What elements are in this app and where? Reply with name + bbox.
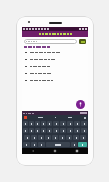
button[interactable]: Enter	[78, 142, 87, 147]
button[interactable]: Key	[74, 128, 80, 133]
button[interactable]	[24, 39, 77, 44]
button[interactable]: Home	[44, 148, 66, 154]
button[interactable]: Key	[53, 121, 59, 126]
button[interactable]: Key	[29, 128, 34, 133]
button[interactable]	[22, 31, 88, 37]
button[interactable]: Back	[22, 148, 44, 154]
button[interactable]: Key	[81, 128, 87, 133]
button[interactable]	[22, 77, 88, 84]
button[interactable]: Key	[74, 121, 80, 126]
button[interactable]: Key	[59, 135, 65, 140]
button[interactable]: Recents	[66, 148, 88, 154]
button[interactable]: Key	[35, 121, 40, 126]
button[interactable]: Key	[60, 121, 66, 126]
button[interactable]	[22, 63, 88, 70]
button[interactable]: Key	[45, 135, 51, 140]
button[interactable]: Key	[67, 128, 73, 133]
button[interactable]	[22, 56, 88, 63]
button[interactable]: Key	[24, 135, 30, 140]
button[interactable]: Key	[23, 121, 28, 126]
button[interactable]: Key	[73, 135, 79, 140]
button[interactable]: Add	[76, 100, 85, 109]
button[interactable]: Period	[71, 142, 77, 147]
button[interactable]: Space	[46, 142, 70, 147]
button[interactable]: Key	[29, 121, 34, 126]
button[interactable]: Key	[60, 128, 66, 133]
button[interactable]: Key	[38, 135, 44, 140]
button[interactable]: Key	[53, 128, 59, 133]
button[interactable]: Key	[41, 121, 46, 126]
button[interactable]: Key	[47, 128, 52, 133]
button[interactable]: Language	[38, 142, 45, 147]
button[interactable]: Key	[81, 121, 87, 126]
button[interactable]: Key	[66, 135, 72, 140]
button[interactable]: Key	[80, 135, 86, 140]
button[interactable]: Key	[41, 128, 46, 133]
button[interactable]: Key	[23, 128, 28, 133]
button[interactable]	[22, 49, 88, 56]
button[interactable]	[22, 70, 88, 77]
button[interactable]: Symbols	[23, 142, 30, 147]
button[interactable]: Key	[47, 121, 52, 126]
button[interactable]: Key	[67, 121, 73, 126]
button[interactable]: Key	[52, 135, 58, 140]
button[interactable]: Key	[35, 128, 40, 133]
button[interactable]: Comma	[31, 142, 37, 147]
button[interactable]: Search	[79, 39, 86, 44]
button[interactable]: Key	[31, 135, 37, 140]
